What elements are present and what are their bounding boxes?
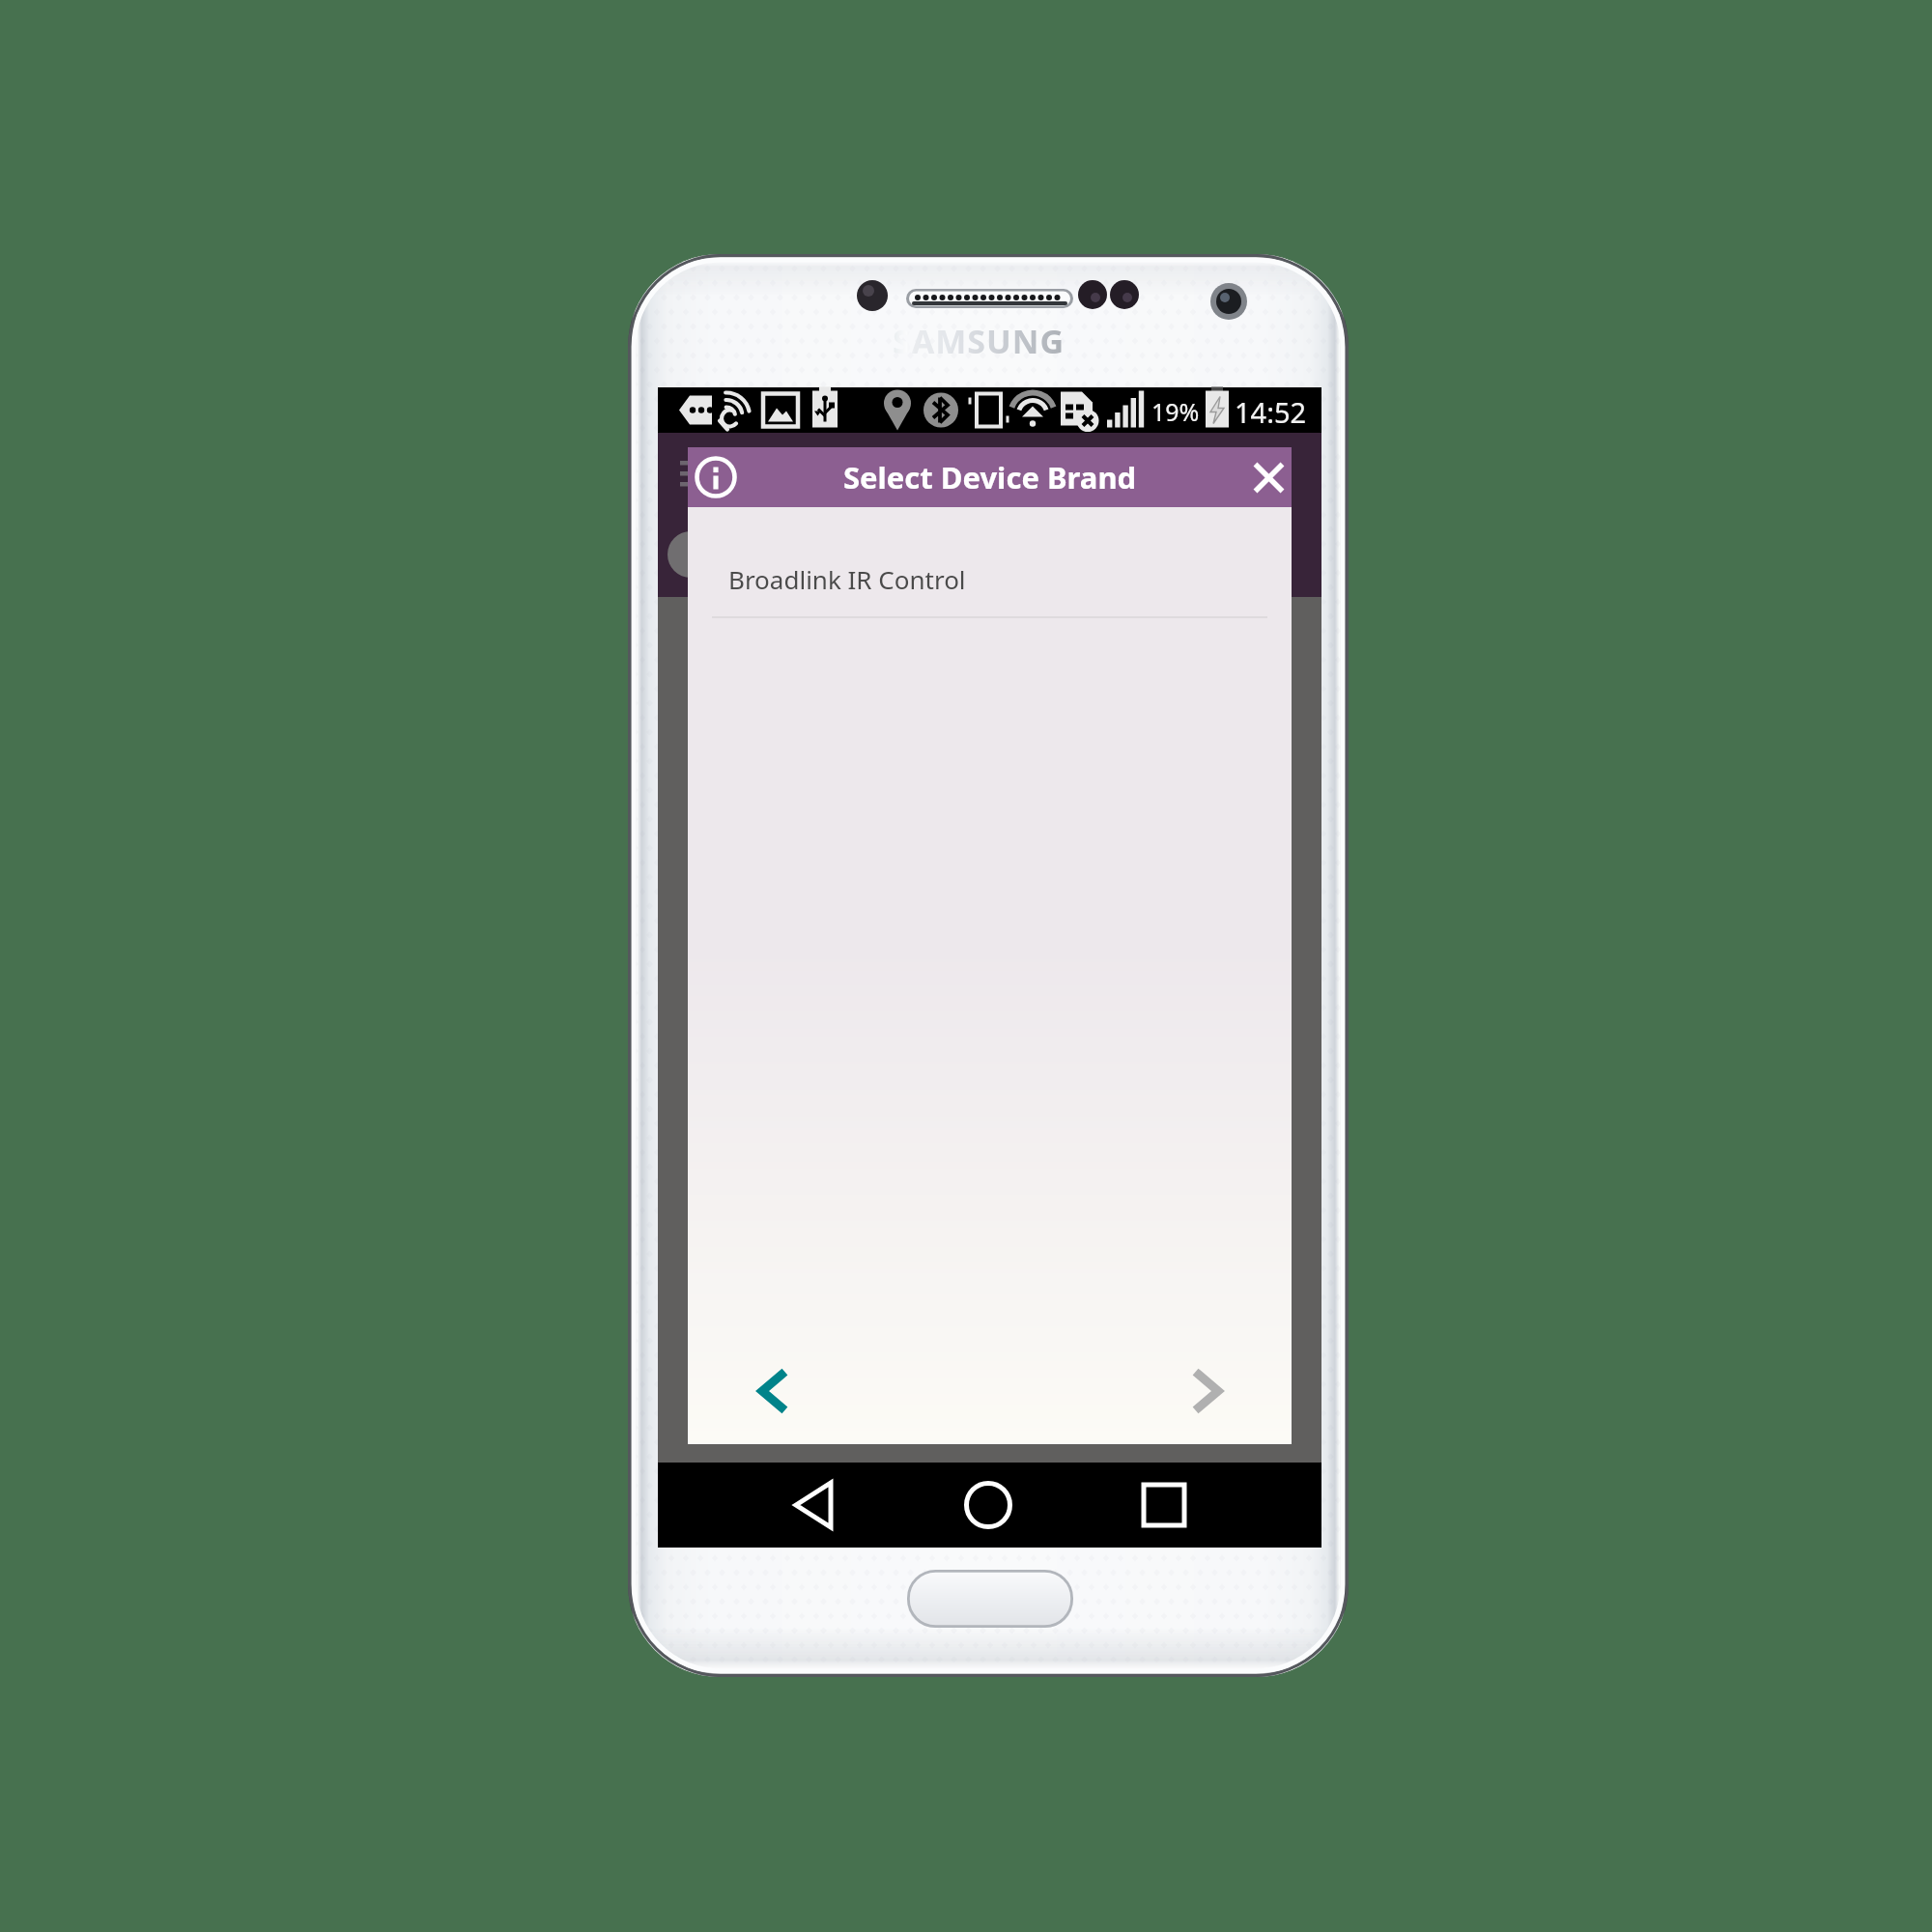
- button[interactable]: Previous: [730, 1350, 813, 1433]
- staticText: SAMSUNG: [893, 319, 1065, 363]
- staticText: Select Device Brand: [843, 457, 1137, 497]
- button[interactable]: Close: [1246, 447, 1292, 507]
- button[interactable]: Add device: [668, 531, 714, 578]
- staticText: 14:52: [1235, 393, 1307, 431]
- button[interactable]: Recents: [1122, 1463, 1207, 1548]
- button[interactable]: Back: [772, 1463, 857, 1548]
- button[interactable]: Broadlink IR Control: [688, 507, 1292, 616]
- button[interactable]: Next: [1167, 1350, 1250, 1433]
- staticText: 19%: [1151, 395, 1200, 428]
- button[interactable]: Home: [946, 1463, 1031, 1548]
- button[interactable]: Open navigation menu: [664, 444, 720, 500]
- button[interactable]: Info: [688, 447, 743, 507]
- staticText: Broadlink IR Control: [728, 562, 966, 596]
